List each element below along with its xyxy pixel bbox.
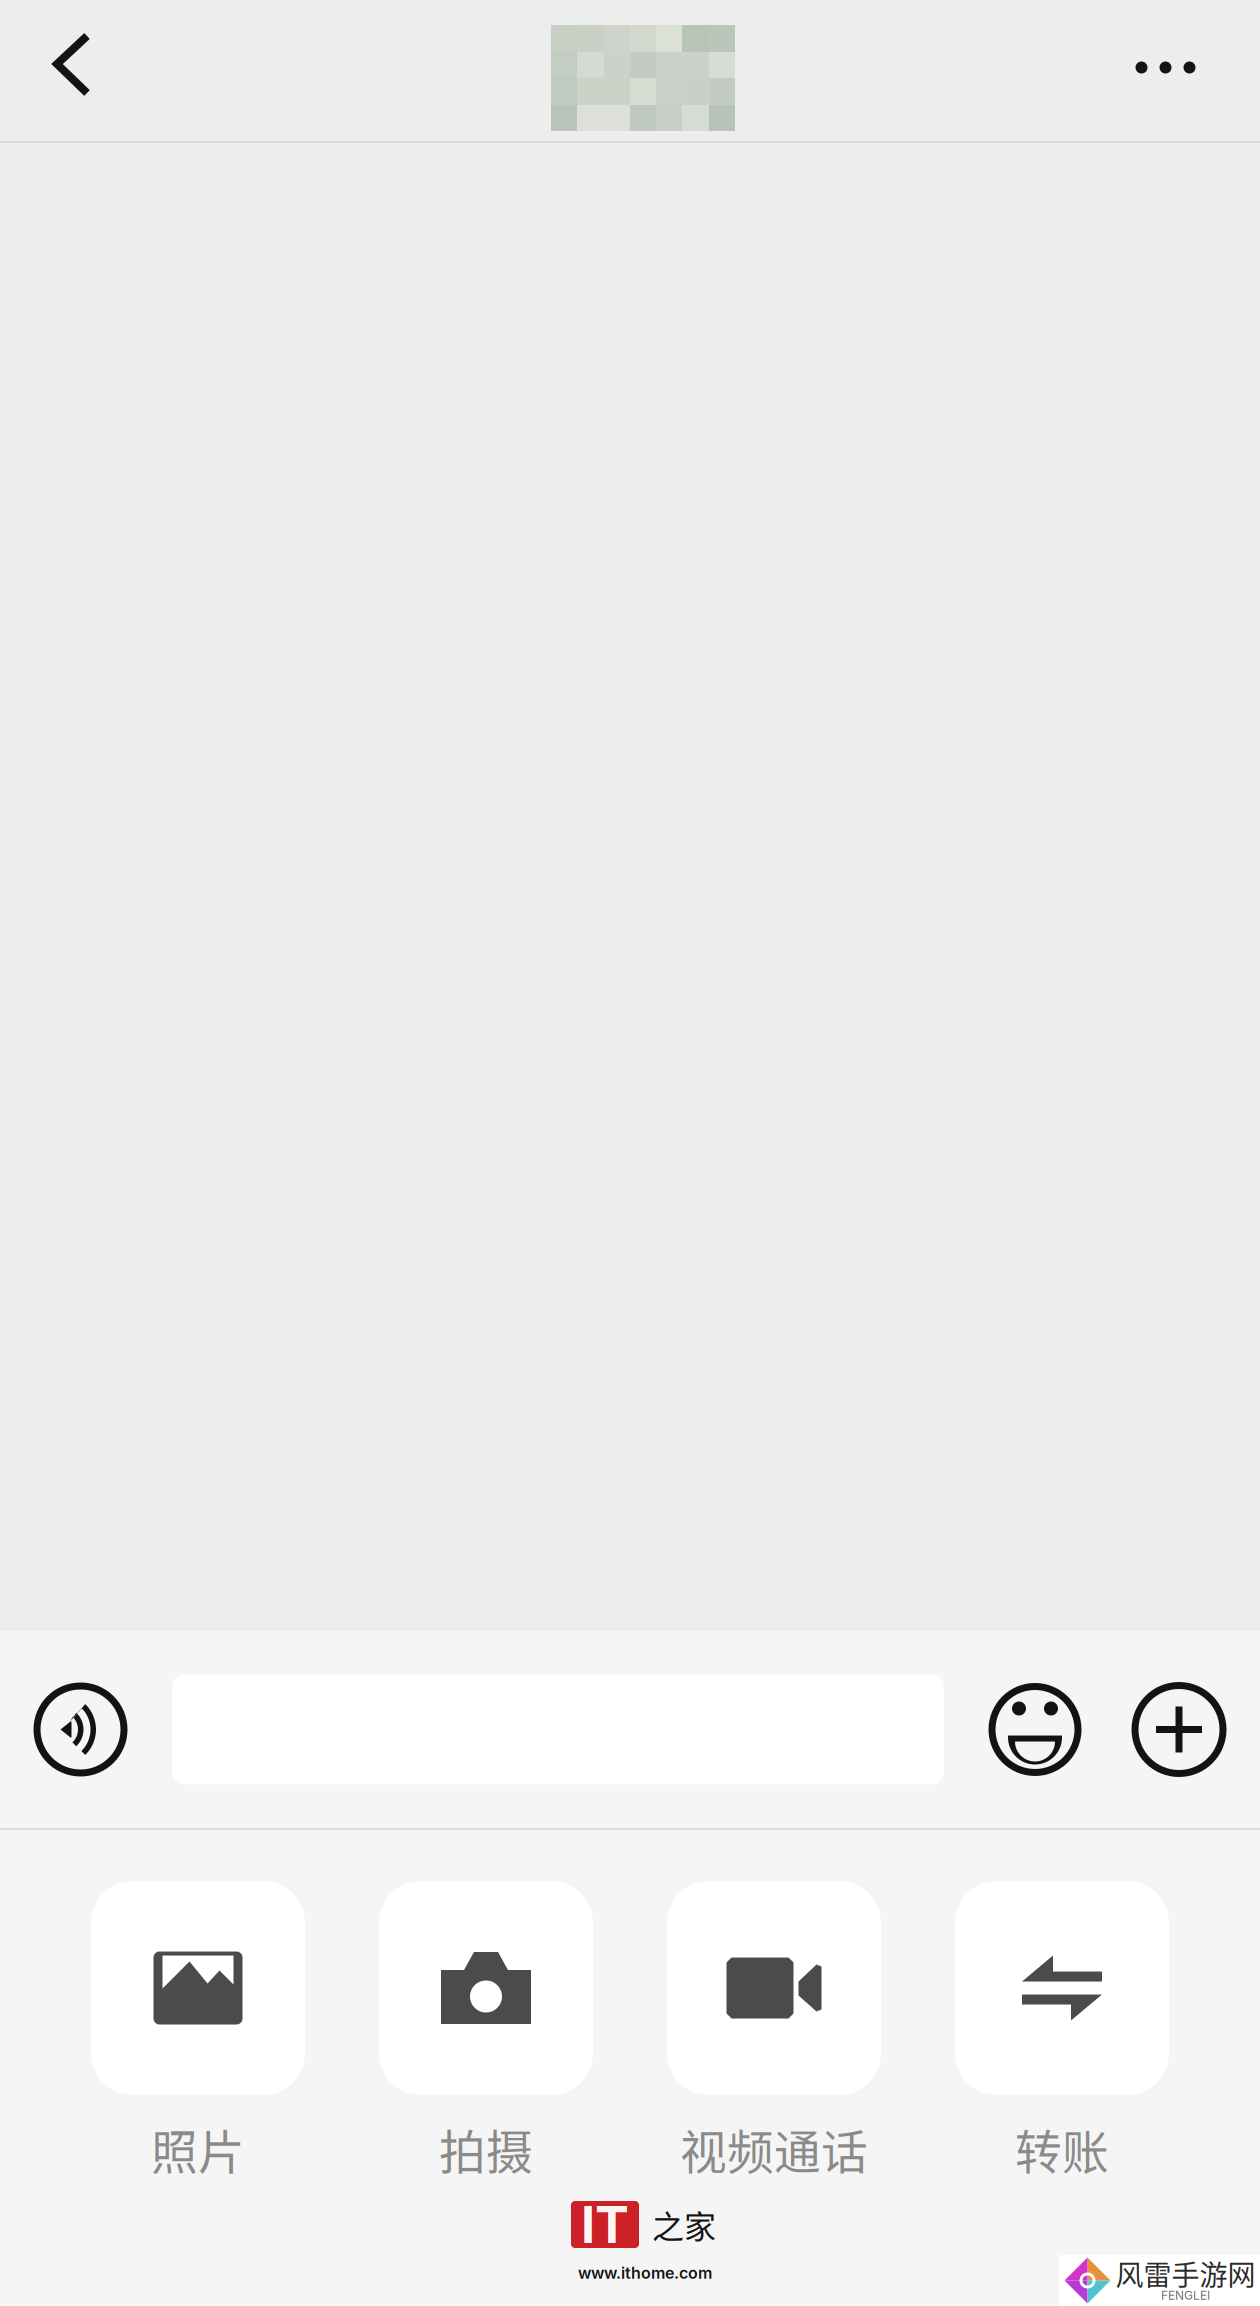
button[interactable]: Back: [0, 0, 144, 141]
staticText: 拍摄: [439, 2115, 533, 2183]
button[interactable]: More tools: [1126, 1631, 1232, 1828]
staticText: 之家: [652, 2201, 716, 2248]
staticText: 转账: [1015, 2115, 1109, 2183]
button[interactable]: 拍摄: [379, 1881, 593, 2174]
staticText: FENGLEI: [1161, 2288, 1210, 2303]
button[interactable]: 视频通话: [667, 1881, 881, 2174]
button[interactable]: Emoji: [944, 1631, 1126, 1828]
staticText: www.ithome.com: [578, 2263, 712, 2283]
button[interactable]: 转账: [955, 1881, 1169, 2174]
staticText: 视频通话: [680, 2115, 868, 2183]
button[interactable]: More options: [1071, 0, 1260, 141]
staticText: 风雷手游网: [1115, 2253, 1255, 2294]
staticText: IT: [581, 2194, 629, 2255]
button[interactable]: Voice message: [0, 1631, 172, 1828]
button[interactable]: 照片: [91, 1881, 305, 2174]
staticText: 照片: [151, 2115, 245, 2183]
